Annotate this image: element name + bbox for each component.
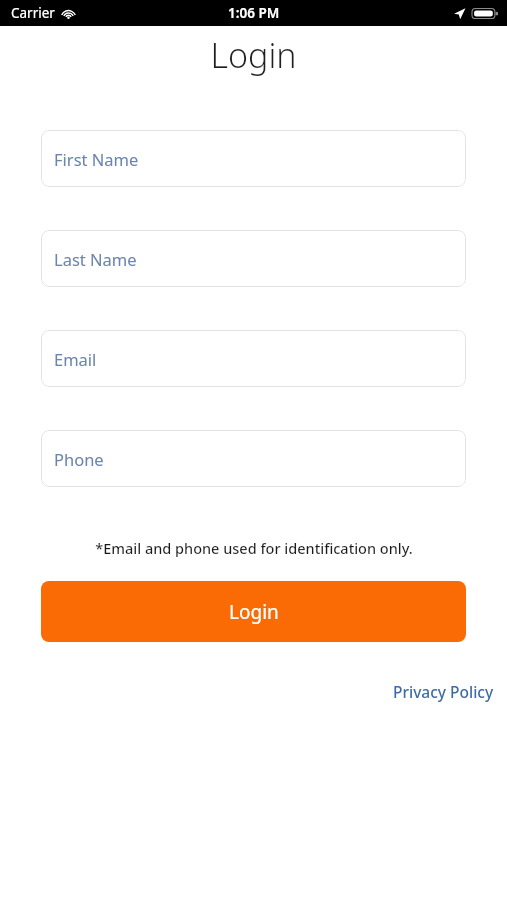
staticText: Login xyxy=(210,32,297,78)
button[interactable]: First Name xyxy=(41,130,466,187)
staticText: Login xyxy=(229,599,279,625)
staticText: *Email and phone used for identification… xyxy=(95,538,413,558)
staticText: Carrier xyxy=(11,4,55,22)
button[interactable]: Last Name xyxy=(41,230,466,287)
staticText: Last Name xyxy=(54,248,137,270)
button[interactable]: Login xyxy=(41,581,466,642)
staticText: First Name xyxy=(54,148,139,170)
other: Location services active xyxy=(453,7,466,20)
staticText: Privacy Policy xyxy=(393,681,494,702)
staticText: Phone xyxy=(54,448,104,470)
staticText: 1:06 PM xyxy=(228,4,280,22)
staticText: Email xyxy=(54,348,97,370)
button[interactable]: Email xyxy=(41,330,466,387)
button[interactable]: Phone xyxy=(41,430,466,487)
button[interactable]: Privacy Policy xyxy=(380,678,507,705)
